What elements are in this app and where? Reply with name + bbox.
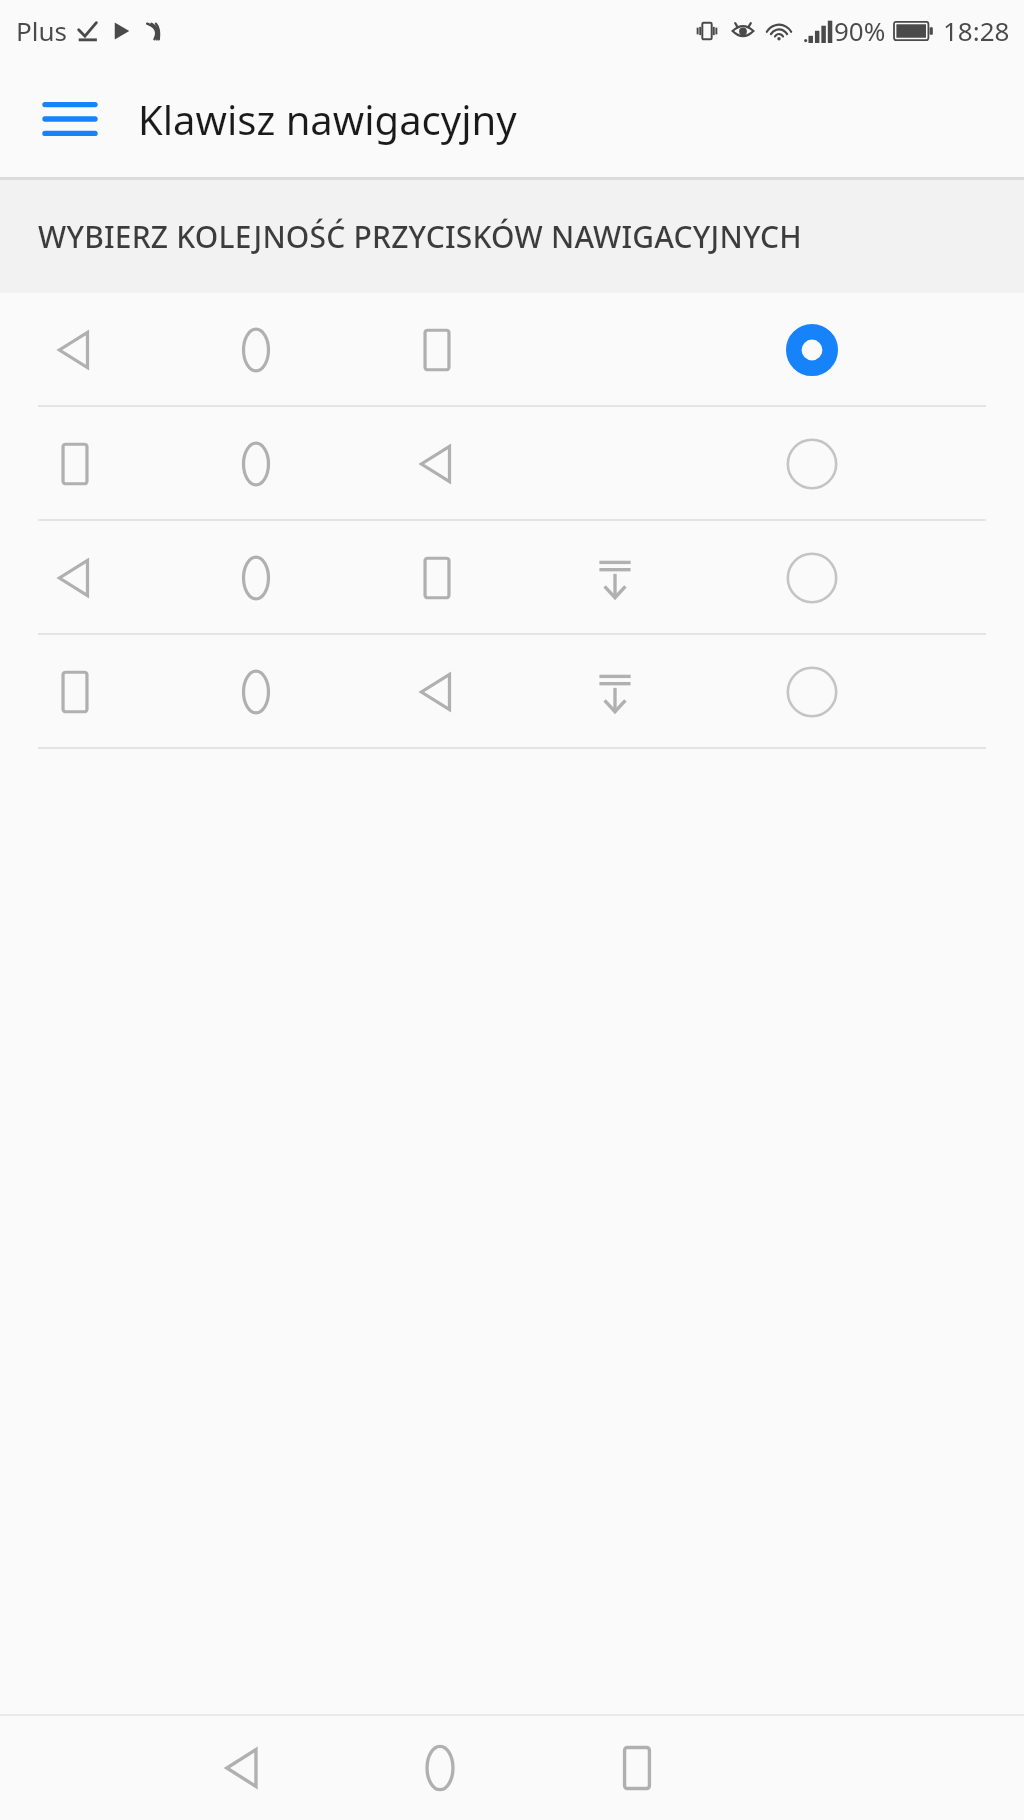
button[interactable]: Ostatnie aplikacje [589,1720,685,1816]
button[interactable]: Ekran główny [392,1720,488,1816]
staticText: WYBIERZ KOLEJNOŚĆ PRZYCISKÓW NAWIGACYJNY… [38,216,802,257]
button[interactable]: Menu [22,71,118,167]
staticText: 90% [834,13,886,48]
button[interactable]: Wstecz [195,1720,291,1816]
button[interactable]: Układ przycisków nawigacyjnych [0,407,1024,521]
staticText: Klawisz nawigacyjny [138,92,517,146]
button[interactable]: Układ przycisków nawigacyjnych [0,293,1024,407]
button[interactable]: Układ przycisków nawigacyjnych [0,635,1024,749]
staticText: Plus [16,13,67,48]
button[interactable]: Układ przycisków nawigacyjnych [0,521,1024,635]
staticText: 18:28 [943,13,1010,48]
